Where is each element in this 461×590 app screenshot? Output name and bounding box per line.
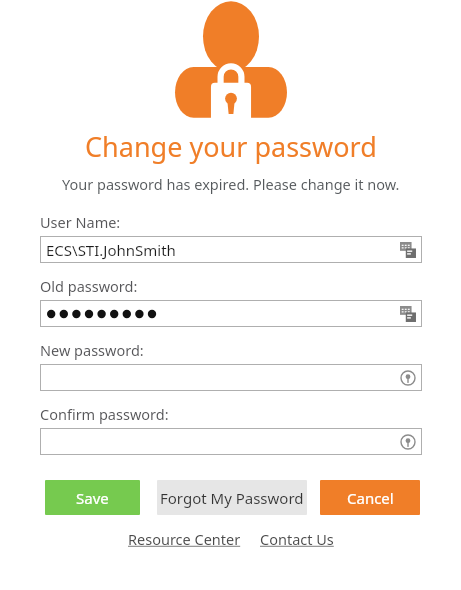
button[interactable]: Open password manager [40,364,422,391]
button[interactable]: Open password manager [398,432,418,452]
staticText: Old password: [40,276,138,296]
staticText: Change your password [85,128,377,165]
button[interactable]: Open password manager [398,368,418,388]
staticText: User Name: [40,212,121,232]
button[interactable]: Autofill credentials [398,240,418,260]
staticText: Confirm password: [40,404,169,424]
button[interactable]: Forgot My Password [157,480,307,515]
button[interactable]: Cancel [320,480,420,515]
staticText: Save [76,488,109,508]
button[interactable]: Autofill credentials [398,304,418,324]
staticText: ECS\STI.JohnSmith [46,240,176,260]
button[interactable]: Resource Center [126,527,243,551]
button[interactable]: Autofill credentials [40,300,422,327]
staticText: New password: [40,340,144,360]
staticText: Your password has expired. Please change… [62,174,400,194]
staticText: Contact Us [260,529,334,549]
staticText: Forgot My Password [160,488,304,508]
staticText: Resource Center [128,529,241,549]
button[interactable]: Save [45,480,140,515]
button[interactable]: Open password manager [40,428,422,455]
staticText: Cancel [347,488,394,508]
button[interactable]: ECS\STI.JohnSmith [40,236,422,263]
button[interactable]: Contact Us [258,527,336,551]
